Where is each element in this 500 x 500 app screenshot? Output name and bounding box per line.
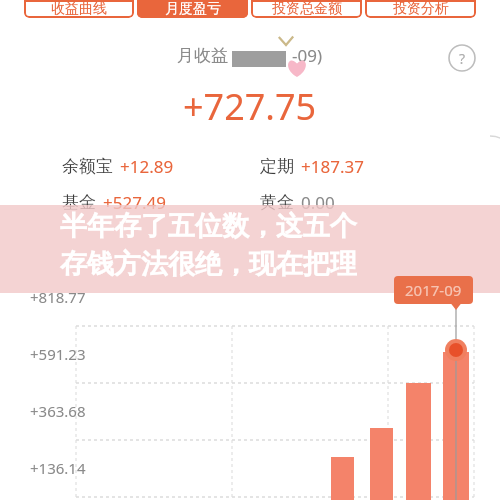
staticText: 半年存了五位数，这五个 — [60, 209, 357, 243]
staticText: +12.89 — [120, 155, 174, 178]
staticText: -09) — [292, 44, 323, 67]
staticText: +363.68 — [30, 401, 86, 421]
staticText: +727.75 — [183, 82, 317, 131]
button[interactable]: 投资总金额 — [251, 0, 362, 18]
staticText: 月度盈亏 — [165, 0, 221, 18]
staticText: 0.00 — [301, 191, 335, 214]
staticText: +818.77 — [30, 287, 86, 307]
staticText: 收益曲线 — [51, 0, 107, 18]
button[interactable]: 投资分析 — [365, 0, 476, 18]
button[interactable]: 收益曲线 — [24, 0, 134, 18]
staticText: 存钱方法很绝，现在把理 — [60, 247, 357, 281]
staticText: +591.23 — [30, 344, 86, 364]
staticText: 投资总金额 — [272, 0, 342, 18]
staticText: 2017-09 — [405, 280, 462, 300]
staticText: 余额宝 — [62, 156, 113, 177]
staticText: 投资分析 — [393, 0, 449, 18]
staticText: +527.49 — [103, 191, 166, 214]
staticText: +187.37 — [301, 155, 364, 178]
staticText: 基金 — [62, 192, 96, 213]
staticText: ? — [459, 49, 466, 68]
staticText: 定期 — [260, 156, 294, 177]
staticText: 月收益 — [177, 45, 228, 66]
button[interactable]: 帮助 — [448, 44, 476, 72]
button[interactable]: 月度盈亏 — [137, 0, 248, 18]
staticText: 黄金 — [260, 192, 294, 213]
staticText: +136.14 — [30, 458, 86, 478]
